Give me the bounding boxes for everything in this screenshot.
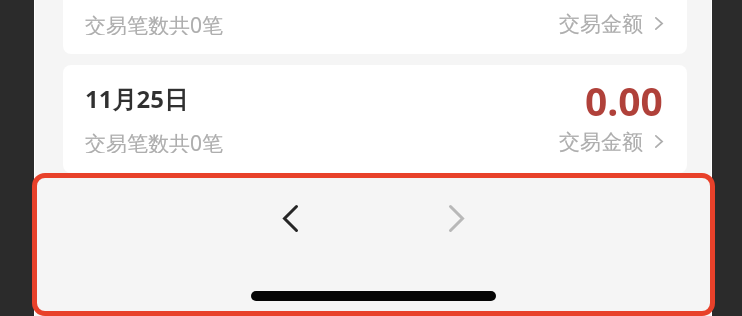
button[interactable]: 交易金额 xyxy=(559,129,663,153)
staticText: 交易金额 xyxy=(559,129,643,153)
staticText: 交易金额 xyxy=(559,11,643,35)
staticText: 0.00 xyxy=(585,74,663,127)
button[interactable]: 交易笔数共0笔 xyxy=(63,0,687,54)
staticText: 交易笔数共0笔 xyxy=(85,129,224,153)
button[interactable]: Forward xyxy=(432,194,480,242)
staticText: 11月25日 xyxy=(85,82,188,115)
button[interactable]: 11月25日 xyxy=(63,65,687,173)
staticText: 交易笔数共0笔 xyxy=(85,11,224,35)
button[interactable]: 交易金额 xyxy=(559,11,663,35)
button[interactable]: Back xyxy=(266,194,314,242)
